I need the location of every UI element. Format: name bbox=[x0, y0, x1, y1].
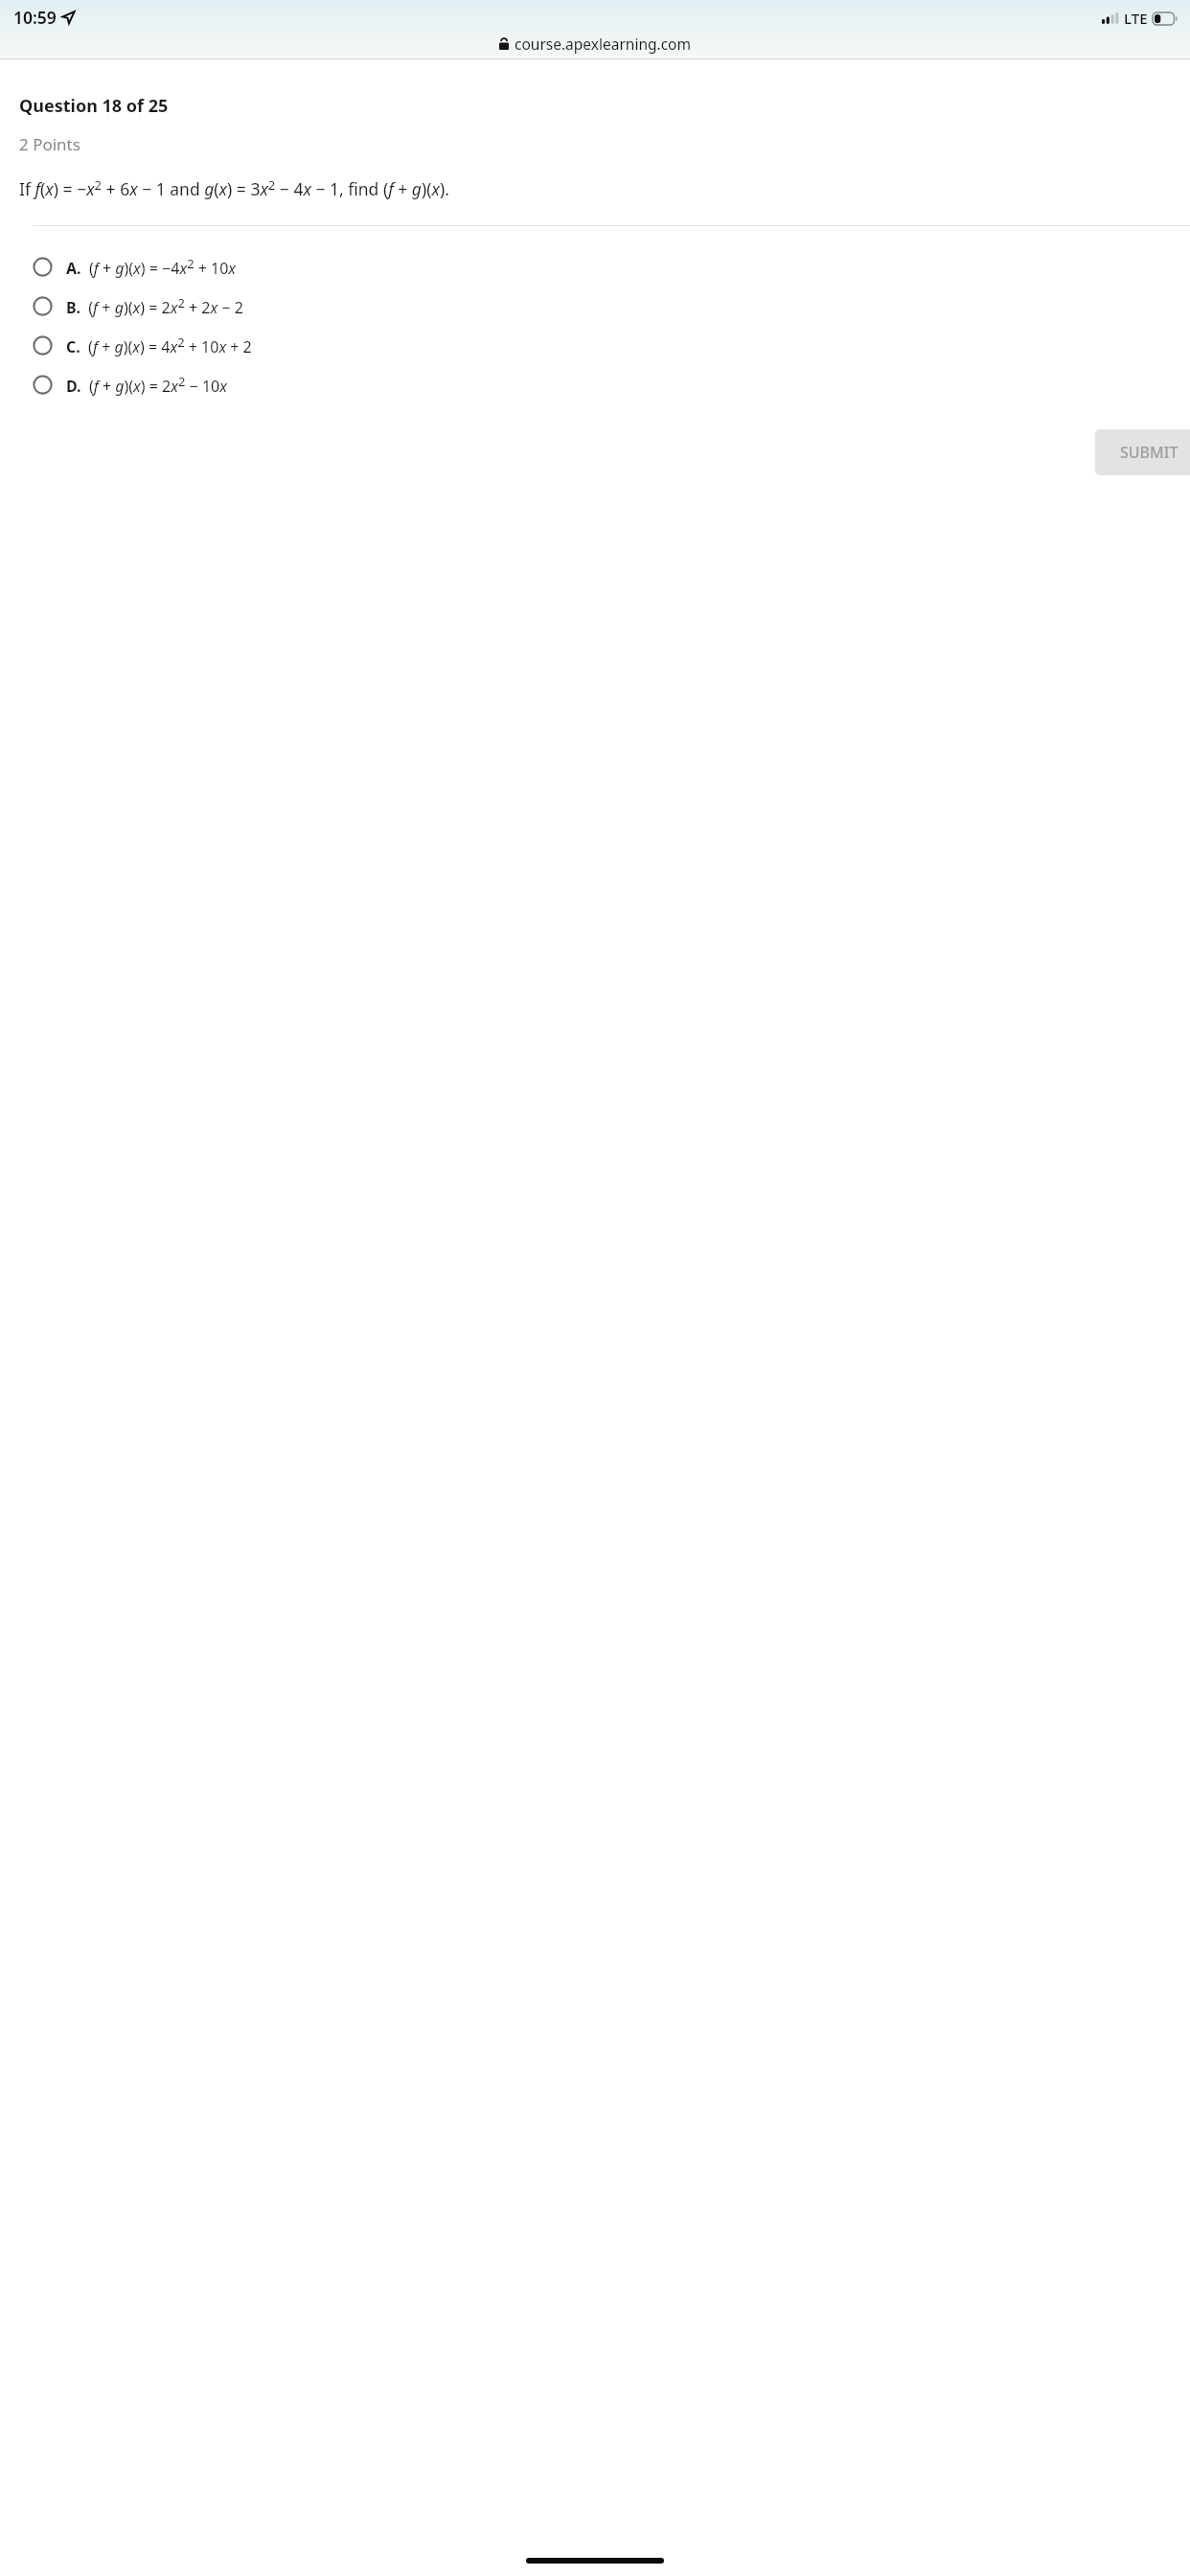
staticText: LTE bbox=[1124, 9, 1148, 28]
staticText: C. (f + g)(x) = 4x2 + 10x + 2 bbox=[66, 333, 252, 357]
button[interactable]: C. (f + g)(x) = 4x2 + 10x + 2 bbox=[0, 330, 1190, 361]
staticText: SUBMIT bbox=[1120, 442, 1179, 463]
staticText: D. (f + g)(x) = 2x2 − 10x bbox=[66, 373, 227, 397]
staticText: A. (f + g)(x) = −4x2 + 10x bbox=[66, 255, 237, 279]
button[interactable]: B. (f + g)(x) = 2x2 + 2x − 2 bbox=[0, 290, 1190, 322]
staticText: 10:59 bbox=[13, 6, 57, 29]
staticText: course.apexlearning.com bbox=[515, 34, 691, 54]
staticText: If f(x) = −x2 + 6x − 1 and g(x) = 3x2 − … bbox=[19, 176, 449, 200]
staticText: 2 Points bbox=[19, 133, 80, 155]
button[interactable]: SUBMIT bbox=[1095, 429, 1190, 475]
staticText: Question 18 of 25 bbox=[19, 94, 169, 118]
button[interactable]: A. (f + g)(x) = −4x2 + 10x bbox=[0, 251, 1190, 283]
button[interactable]: D. (f + g)(x) = 2x2 − 10x bbox=[0, 369, 1190, 401]
staticText: B. (f + g)(x) = 2x2 + 2x − 2 bbox=[66, 294, 243, 318]
button[interactable]: course.apexlearning.com bbox=[493, 32, 697, 56]
